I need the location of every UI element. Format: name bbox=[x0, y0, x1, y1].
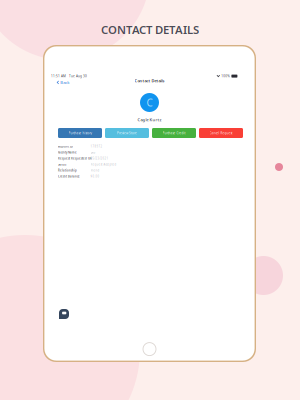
button[interactable]: Chat bbox=[58, 308, 70, 320]
staticText: 178972 bbox=[90, 145, 102, 148]
button[interactable]: Cancel Request bbox=[199, 128, 243, 138]
staticText: 05/23/2021 bbox=[90, 157, 108, 160]
staticText: Credit Balance bbox=[58, 175, 80, 178]
staticText: 11:51 AM Tue Aug 30 bbox=[51, 74, 87, 78]
staticText: Relationship bbox=[58, 169, 77, 172]
staticText: $0.00 bbox=[90, 175, 99, 178]
staticText: Request Requested On bbox=[58, 157, 92, 160]
staticText: C bbox=[146, 96, 152, 109]
staticText: Purchase history bbox=[68, 131, 91, 135]
staticText: LAB bbox=[90, 151, 95, 154]
button[interactable]: Back bbox=[54, 78, 71, 87]
staticText: Status bbox=[58, 163, 66, 166]
staticText: Friend bbox=[90, 169, 99, 172]
staticText: Facility Name bbox=[58, 151, 77, 154]
staticText: 100% bbox=[221, 74, 230, 78]
staticText: Contact Details bbox=[134, 78, 164, 83]
staticText: Purchase Credit bbox=[162, 131, 185, 135]
staticText: Preview Store bbox=[117, 131, 137, 135]
button[interactable]: Purchase history bbox=[58, 128, 102, 138]
staticText: Cagle Kurtz bbox=[137, 117, 161, 122]
staticText: Cancel Request bbox=[209, 131, 232, 135]
button[interactable]: Purchase Credit bbox=[152, 128, 196, 138]
staticText: Account ID bbox=[58, 145, 73, 148]
staticText: Request Accepted bbox=[90, 163, 116, 166]
staticText: Back bbox=[60, 79, 69, 85]
button[interactable]: Preview Store bbox=[105, 128, 149, 138]
staticText: CONTACT DETAILS bbox=[101, 22, 199, 37]
